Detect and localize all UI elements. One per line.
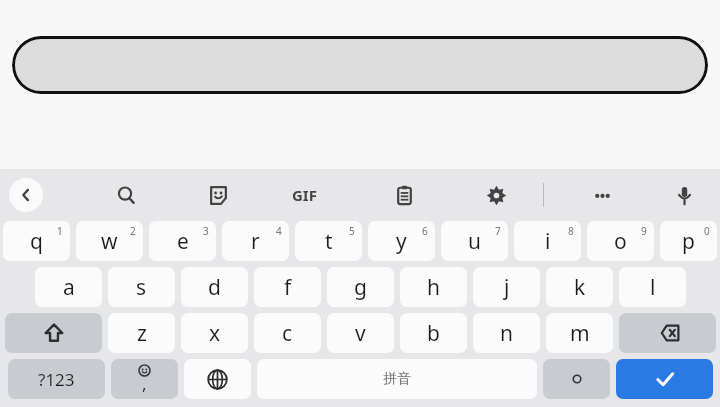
- button[interactable]: h: [400, 267, 467, 307]
- staticText: z: [137, 319, 147, 348]
- staticText: c: [282, 319, 293, 348]
- staticText: w: [101, 227, 118, 256]
- button[interactable]: z: [108, 313, 175, 353]
- button[interactable]: Back: [9, 178, 43, 212]
- button[interactable]: m: [546, 313, 613, 353]
- button[interactable]: e: [149, 221, 216, 261]
- staticText: m: [570, 319, 590, 348]
- staticText: x: [209, 319, 221, 348]
- staticText: g: [354, 273, 367, 302]
- staticText: ?123: [38, 368, 75, 391]
- staticText: ,: [142, 372, 147, 395]
- staticText: r: [251, 227, 260, 256]
- button[interactable]: g: [327, 267, 394, 307]
- staticText: 3: [203, 224, 209, 238]
- button[interactable]: t: [295, 221, 362, 261]
- staticText: d: [208, 273, 221, 302]
- staticText: 6: [422, 224, 428, 238]
- button[interactable]: f: [254, 267, 321, 307]
- button[interactable]: w: [76, 221, 143, 261]
- button[interactable]: b: [400, 313, 467, 353]
- button[interactable]: Clipboard: [382, 173, 426, 217]
- staticText: i: [545, 227, 551, 256]
- button[interactable]: Emoji and comma: [111, 359, 178, 399]
- staticText: h: [427, 273, 440, 302]
- button[interactable]: d: [181, 267, 248, 307]
- button[interactable]: Stickers: [196, 173, 240, 217]
- button[interactable]: n: [473, 313, 540, 353]
- staticText: q: [30, 227, 43, 256]
- button[interactable]: Enter: [616, 359, 713, 399]
- staticText: p: [682, 227, 695, 256]
- staticText: 9: [641, 224, 647, 238]
- button[interactable]: c: [254, 313, 321, 353]
- staticText: 5: [349, 224, 355, 238]
- staticText: o: [614, 227, 627, 256]
- staticText: 0: [704, 224, 710, 238]
- button[interactable]: a: [35, 267, 102, 307]
- button[interactable]: Full stop: [543, 359, 610, 399]
- staticText: k: [574, 273, 586, 302]
- staticText: 2: [130, 224, 136, 238]
- button[interactable]: 拼音: [257, 359, 537, 399]
- button[interactable]: s: [108, 267, 175, 307]
- button[interactable]: x: [181, 313, 248, 353]
- staticText: v: [355, 319, 366, 348]
- button[interactable]: y: [368, 221, 435, 261]
- staticText: t: [325, 227, 333, 256]
- button[interactable]: Voice input: [662, 173, 706, 217]
- button[interactable]: k: [546, 267, 613, 307]
- button[interactable]: l: [619, 267, 686, 307]
- staticText: l: [650, 273, 656, 302]
- staticText: u: [468, 227, 481, 256]
- staticText: GIF: [292, 185, 317, 205]
- button[interactable]: More options: [580, 173, 624, 217]
- button[interactable]: Switch language: [184, 359, 251, 399]
- staticText: b: [427, 319, 440, 348]
- button[interactable]: ?123: [8, 359, 105, 399]
- button[interactable]: o: [587, 221, 654, 261]
- staticText: j: [504, 273, 510, 302]
- button[interactable]: Backspace: [619, 313, 716, 353]
- button[interactable]: j: [473, 267, 540, 307]
- staticText: f: [284, 273, 292, 302]
- staticText: e: [177, 227, 189, 256]
- button[interactable]: q: [3, 221, 70, 261]
- button[interactable]: v: [327, 313, 394, 353]
- button[interactable]: Settings: [474, 173, 518, 217]
- button[interactable]: [12, 36, 708, 94]
- button[interactable]: Search: [104, 173, 148, 217]
- staticText: 4: [276, 224, 282, 238]
- staticText: s: [136, 273, 147, 302]
- staticText: n: [500, 319, 513, 348]
- staticText: 8: [568, 224, 574, 238]
- button[interactable]: i: [514, 221, 581, 261]
- button[interactable]: Shift: [5, 313, 102, 353]
- button[interactable]: GIF: [276, 175, 332, 215]
- staticText: 拼音: [383, 370, 411, 388]
- button[interactable]: p: [660, 221, 717, 261]
- button[interactable]: r: [222, 221, 289, 261]
- button[interactable]: u: [441, 221, 508, 261]
- staticText: y: [396, 227, 407, 256]
- staticText: 7: [495, 224, 501, 238]
- staticText: a: [63, 273, 75, 302]
- staticText: 1: [57, 224, 63, 238]
